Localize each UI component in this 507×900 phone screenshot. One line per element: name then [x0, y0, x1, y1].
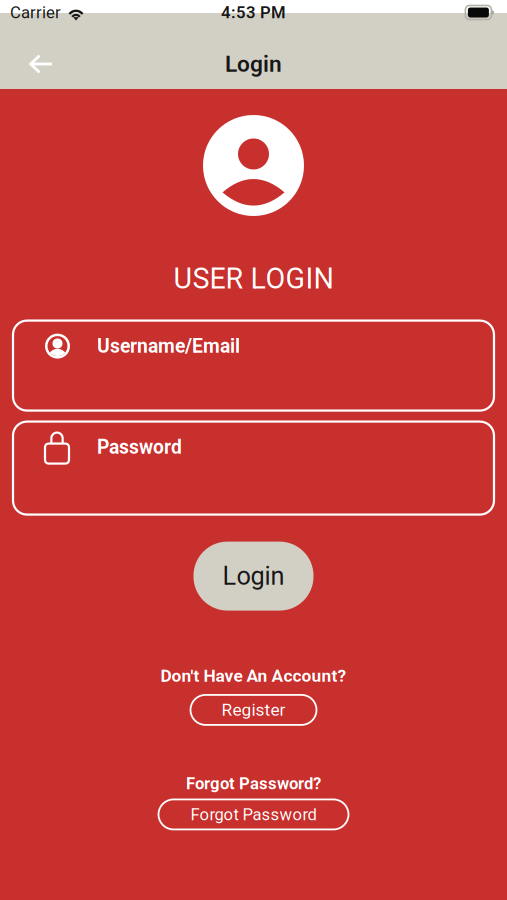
- staticText: Login: [225, 51, 282, 77]
- button[interactable]: Register: [190, 695, 316, 725]
- button[interactable]: Password: [13, 422, 494, 515]
- staticText: Forgot Password: [190, 805, 316, 824]
- staticText: USER LOGIN: [173, 262, 333, 296]
- button[interactable]: Login: [193, 542, 313, 611]
- button[interactable]: Forgot Password: [158, 799, 348, 829]
- staticText: Username/Email: [97, 335, 240, 357]
- staticText: Register: [221, 700, 285, 720]
- staticText: Forgot Password?: [186, 774, 321, 793]
- staticText: Don't Have An Account?: [160, 666, 346, 686]
- staticText: 4:53 PM: [221, 3, 286, 22]
- staticText: Login: [222, 561, 284, 591]
- staticText: Carrier: [10, 3, 61, 22]
- button[interactable]: Back: [0, 42, 81, 86]
- staticText: Password: [97, 436, 182, 458]
- button[interactable]: Username/Email: [13, 321, 494, 411]
